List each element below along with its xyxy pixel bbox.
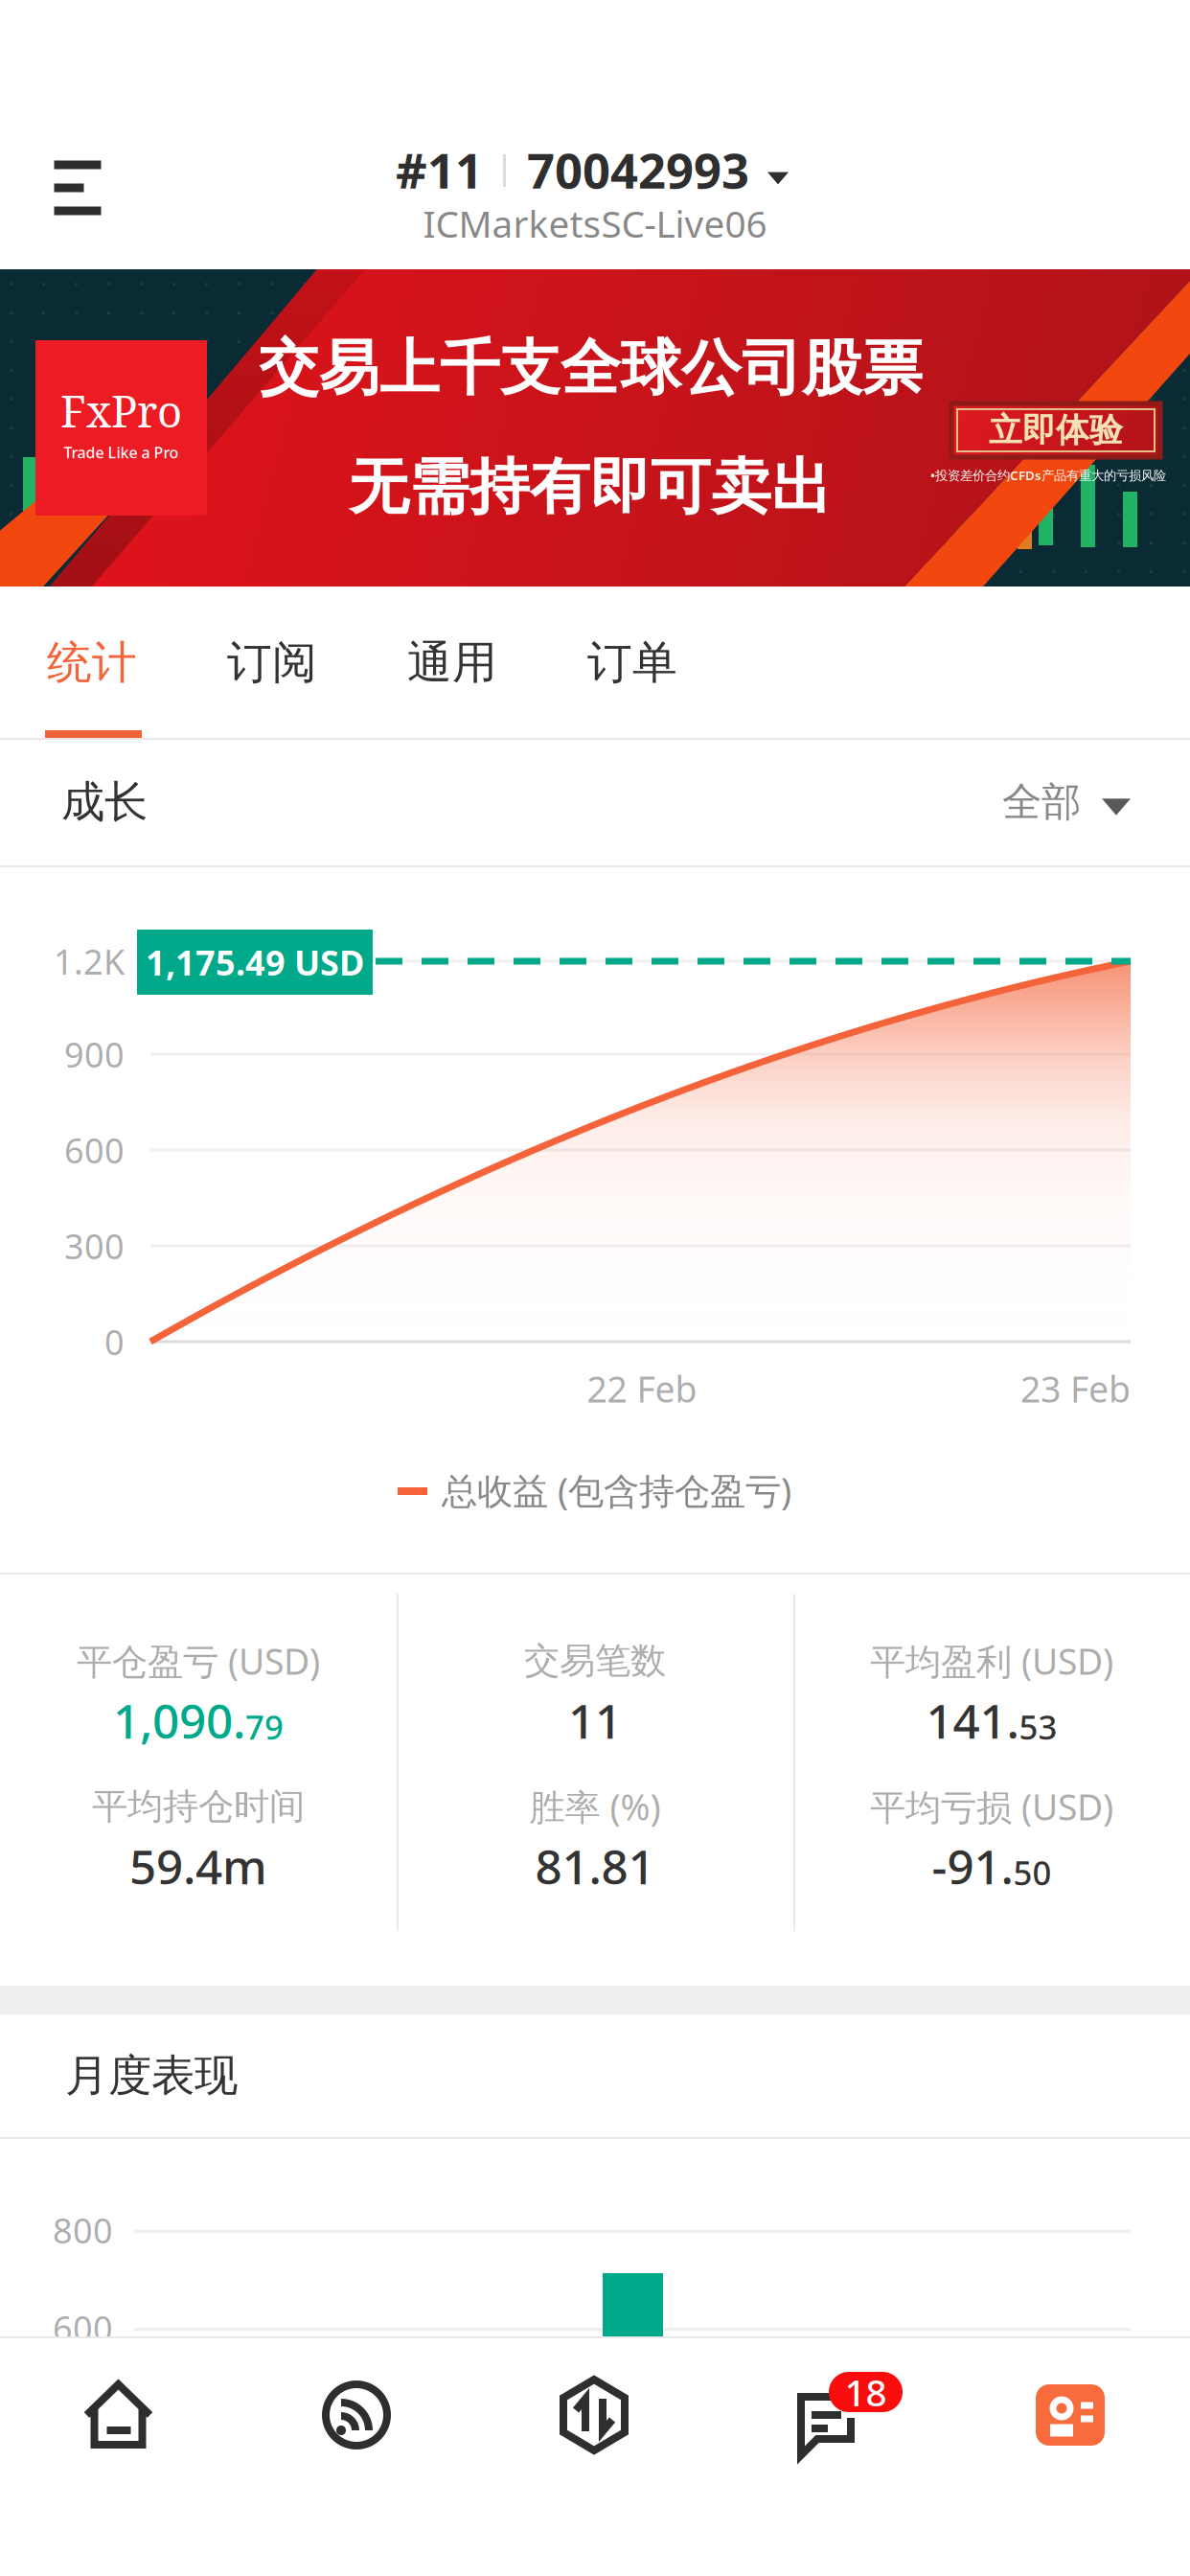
staticText: FxPro	[60, 381, 182, 440]
staticText: ICMarketsSC-Live06	[423, 199, 767, 248]
staticText: 81.81	[535, 1834, 655, 1897]
staticText: 300	[64, 1223, 125, 1269]
staticText: 0	[104, 1319, 125, 1365]
button[interactable]: Quotes	[238, 2338, 475, 2492]
staticText: 11	[568, 1689, 622, 1752]
staticText: 平均持仓时间	[92, 1785, 305, 1828]
staticText: 18	[845, 2367, 887, 2417]
staticText: 50	[1013, 1850, 1052, 1894]
button[interactable]: Messages	[713, 2338, 950, 2492]
staticText: 立即体验	[989, 410, 1123, 451]
staticText: 141.	[926, 1689, 1019, 1752]
button[interactable]: Menu	[0, 123, 155, 253]
staticText: 全部	[1002, 778, 1081, 826]
staticText: -91.	[932, 1834, 1013, 1897]
staticText: 月度表现	[65, 2049, 238, 2102]
staticText: 600	[53, 2305, 113, 2351]
staticText: 900	[64, 1031, 125, 1077]
button[interactable]: 全部	[0, 739, 1131, 865]
button[interactable]: 通用	[407, 587, 587, 738]
staticText: •投资差价合约CFDs产品有重大的亏损风险	[930, 467, 1166, 484]
staticText: 平均亏损 (USD)	[870, 1783, 1113, 1830]
staticText: 通用	[407, 635, 497, 690]
staticText: 1.2K	[54, 938, 125, 984]
button[interactable]: 统计	[47, 587, 227, 738]
button[interactable]: #11	[0, 139, 1190, 200]
staticText: 59.4m	[129, 1834, 267, 1897]
staticText: 订单	[587, 635, 677, 690]
staticText: 成长	[61, 775, 148, 829]
staticText: 53	[1019, 1705, 1057, 1749]
staticText: Trade Like a Pro	[64, 442, 179, 462]
staticText: 1,090.	[113, 1689, 245, 1752]
staticText: 70042993	[527, 137, 749, 202]
button[interactable]: 订阅	[227, 587, 407, 738]
button[interactable]: Home	[0, 2338, 238, 2492]
staticText: 平仓盈亏 (USD)	[77, 1637, 320, 1685]
button[interactable]: Trade	[475, 2338, 713, 2492]
staticText: #11	[396, 137, 483, 202]
staticText: 1,175.49 USD	[146, 939, 364, 985]
staticText: 22 Feb	[587, 1365, 697, 1412]
staticText: 79	[245, 1705, 284, 1749]
staticText: 平均盈利 (USD)	[870, 1637, 1113, 1685]
staticText: 订阅	[227, 635, 317, 690]
button[interactable]: Profile	[950, 2338, 1190, 2492]
staticText: 800	[53, 2207, 113, 2253]
staticText: 无需持有即可卖出	[349, 450, 832, 524]
staticText: 胜率 (%)	[529, 1783, 661, 1830]
staticText: 总收益 (包含持仓盈亏)	[442, 1466, 791, 1514]
staticText: 23 Feb	[1020, 1365, 1131, 1412]
staticText: 600	[64, 1127, 125, 1173]
staticText: 交易上千支全球公司股票	[259, 332, 923, 405]
staticText: 交易笔数	[524, 1639, 666, 1683]
button[interactable]: 订单	[587, 587, 767, 738]
staticText: 统计	[47, 635, 137, 690]
